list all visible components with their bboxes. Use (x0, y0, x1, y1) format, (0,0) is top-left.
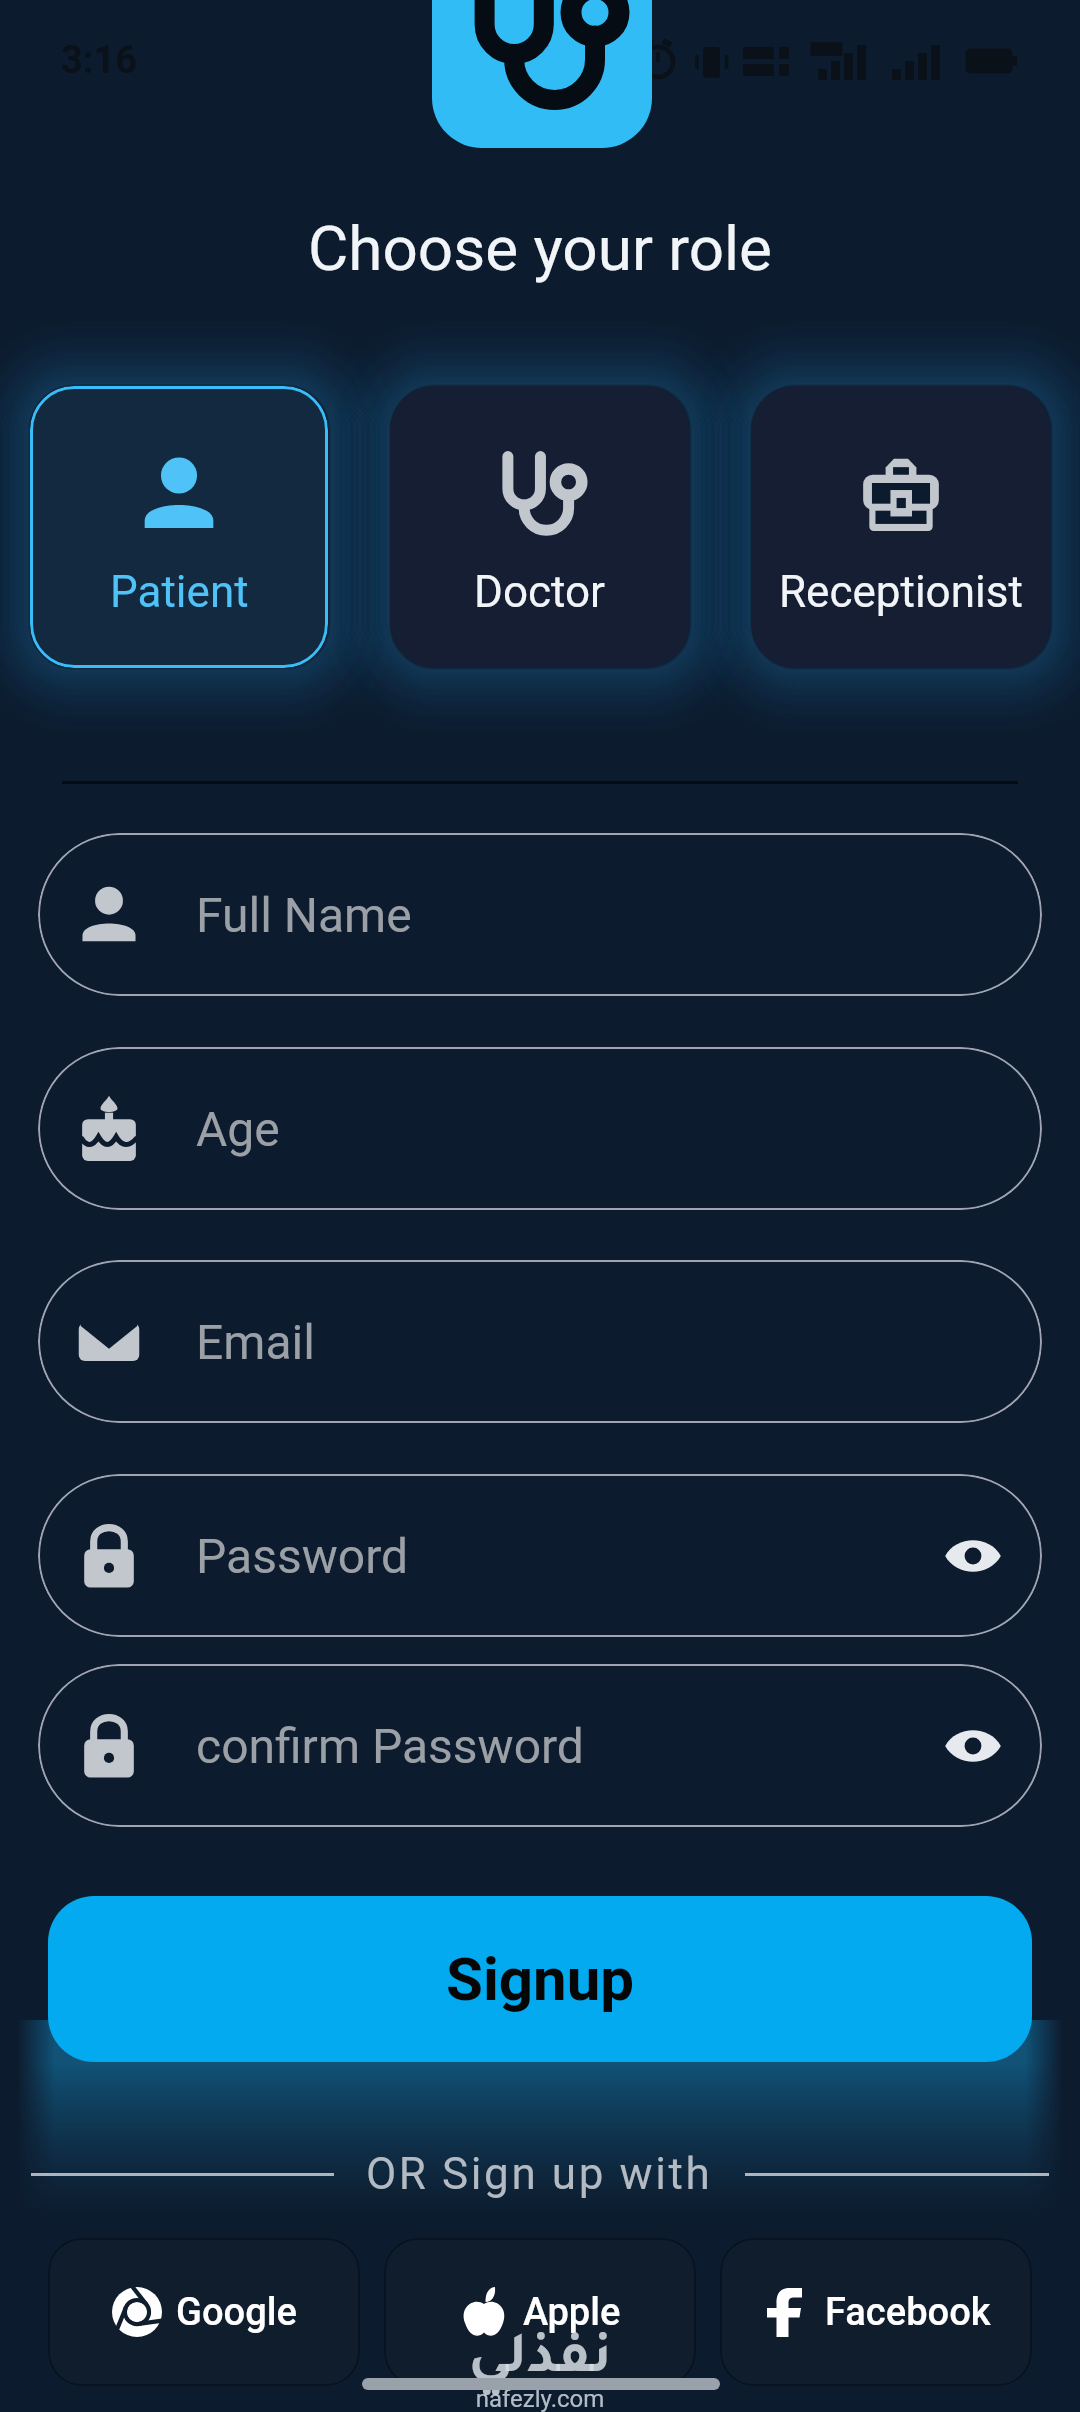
staticText: OR Sign up with (366, 2148, 713, 2200)
staticText: Apple (523, 2290, 621, 2335)
staticText: Full Name (196, 887, 1004, 943)
button[interactable]: Facebook (720, 2238, 1032, 2386)
button[interactable]: Email (38, 1260, 1042, 1423)
button[interactable]: Receptionist (751, 386, 1050, 668)
staticText: Patient (110, 566, 249, 618)
button[interactable]: Show password (942, 1715, 1004, 1777)
button[interactable]: Patient (30, 386, 328, 668)
button[interactable]: Apple (384, 2238, 696, 2386)
staticText: Email (196, 1314, 1004, 1370)
button[interactable]: Full Name (38, 833, 1042, 996)
staticText: Google (176, 2290, 297, 2335)
staticText: Doctor (474, 566, 605, 618)
staticText: نفذلي (0, 2334, 1080, 2392)
button[interactable]: Signup (48, 1896, 1032, 2062)
staticText: Signup (446, 1944, 635, 2014)
button[interactable]: Show password (942, 1525, 1004, 1587)
staticText: 3:16 (61, 38, 138, 83)
staticText: Receptionist (779, 566, 1023, 618)
staticText: confirm Password (196, 1718, 942, 1774)
staticText: Age (196, 1101, 1004, 1157)
staticText: Facebook (825, 2290, 991, 2335)
button[interactable]: confirm Password (38, 1664, 1042, 1827)
staticText: nafezly.com (0, 2385, 1080, 2412)
staticText: Choose your role (0, 212, 1080, 285)
button[interactable]: Age (38, 1047, 1042, 1210)
button[interactable]: Doctor (390, 386, 689, 668)
staticText: Password (196, 1528, 942, 1584)
button[interactable]: Google (48, 2238, 360, 2386)
button[interactable]: Password (38, 1474, 1042, 1637)
